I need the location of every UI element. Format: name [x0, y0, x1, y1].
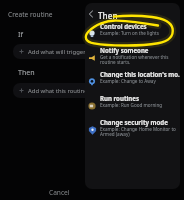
staticText: Example: Change to Away: [100, 78, 156, 84]
button[interactable]: Cancel: [49, 188, 70, 197]
staticText: Create routine: [8, 10, 53, 19]
button[interactable]: Control devices: [85, 22, 180, 46]
staticText: Example: Turn on the lights: [100, 30, 159, 36]
staticText: Get a notification whenever this routine…: [100, 54, 169, 66]
button[interactable]: Add what will trigger: [13, 44, 93, 59]
staticText: Example: Run Good morning: [100, 102, 163, 108]
button[interactable]: Change security mode: [85, 118, 180, 142]
staticText: Notify someone: [100, 46, 149, 54]
button[interactable]: Run routines: [85, 94, 180, 118]
button[interactable]: Change this location's mo..: [85, 70, 180, 94]
staticText: Then: [98, 10, 118, 21]
staticText: Change this location's mo..: [100, 70, 180, 78]
staticText: Cancel: [49, 188, 70, 197]
staticText: Add what this routine: [28, 87, 88, 95]
button[interactable]: Notify someone: [85, 46, 180, 70]
button[interactable]: Add what this routine: [13, 83, 93, 98]
staticText: Example: Change Home Monitor to Armed (a…: [100, 126, 176, 138]
button[interactable]: Back: [85, 7, 98, 21]
staticText: If: [18, 30, 23, 40]
staticText: Run routines: [100, 94, 139, 102]
staticText: Add what will trigger: [28, 48, 86, 56]
staticText: Control devices: [100, 22, 147, 30]
staticText: Then: [18, 68, 35, 78]
staticText: Change security mode: [100, 118, 168, 126]
